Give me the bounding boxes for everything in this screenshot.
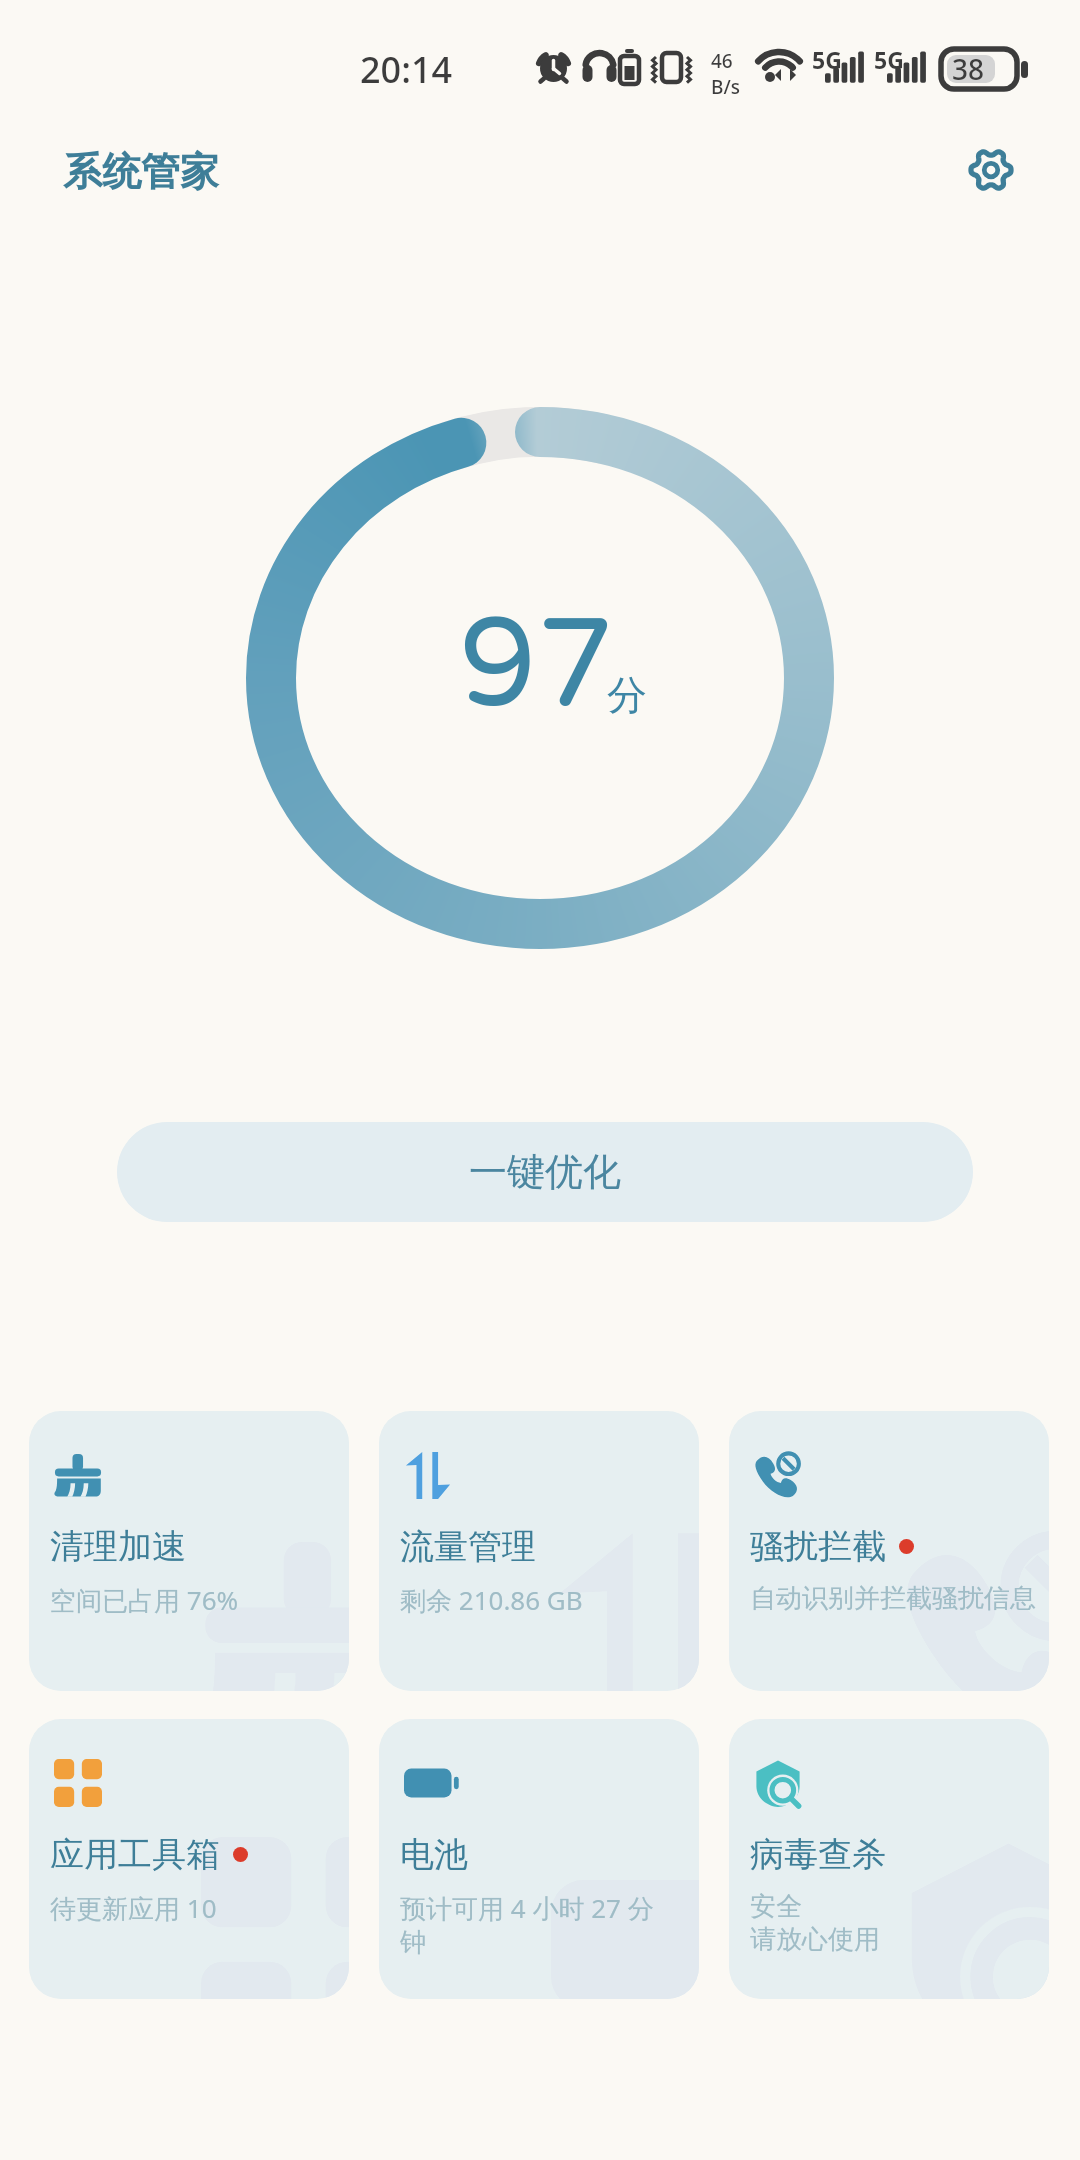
button[interactable]: 电池 — [379, 1719, 699, 1999]
staticText: 电池 — [400, 1833, 468, 1876]
staticText: 5G — [874, 44, 904, 75]
button[interactable]: 清理加速 — [29, 1411, 349, 1691]
button[interactable]: 流量管理 — [379, 1411, 699, 1691]
staticText: 预计可用 4 小时 27 分 — [400, 1890, 654, 1926]
staticText: 病毒查杀 — [750, 1833, 886, 1876]
staticText: 20:14 — [360, 45, 453, 94]
staticText: 剩余 210.86 GB — [400, 1582, 583, 1618]
staticText: 空间已占用 76% — [50, 1582, 239, 1618]
staticText: 一键优化 — [469, 1148, 621, 1196]
staticText: 安全 — [750, 1890, 802, 1923]
staticText: 钟 — [400, 1926, 426, 1959]
staticText: B/s — [711, 74, 740, 100]
button[interactable]: 病毒查杀 — [729, 1719, 1049, 1999]
staticText: 5G — [812, 44, 842, 75]
button[interactable]: 一键优化 — [117, 1122, 973, 1222]
staticText: 骚扰拦截 — [750, 1525, 886, 1568]
staticText: 分 — [607, 670, 647, 720]
staticText: 系统管家 — [63, 147, 219, 196]
button[interactable]: Settings — [947, 126, 1035, 214]
staticText: 流量管理 — [400, 1525, 536, 1568]
button[interactable]: 应用工具箱 — [29, 1719, 349, 1999]
staticText: 97 — [459, 591, 615, 740]
staticText: 清理加速 — [50, 1525, 186, 1568]
staticText: 自动识别并拦截骚扰信息 — [750, 1582, 1036, 1615]
staticText: 应用工具箱 — [50, 1833, 220, 1876]
staticText: 38 — [952, 50, 985, 88]
staticText: 请放心使用 — [750, 1923, 880, 1956]
button[interactable]: 骚扰拦截 — [729, 1411, 1049, 1691]
staticText: 46 — [711, 48, 733, 74]
staticText: 待更新应用 10 — [50, 1890, 217, 1926]
